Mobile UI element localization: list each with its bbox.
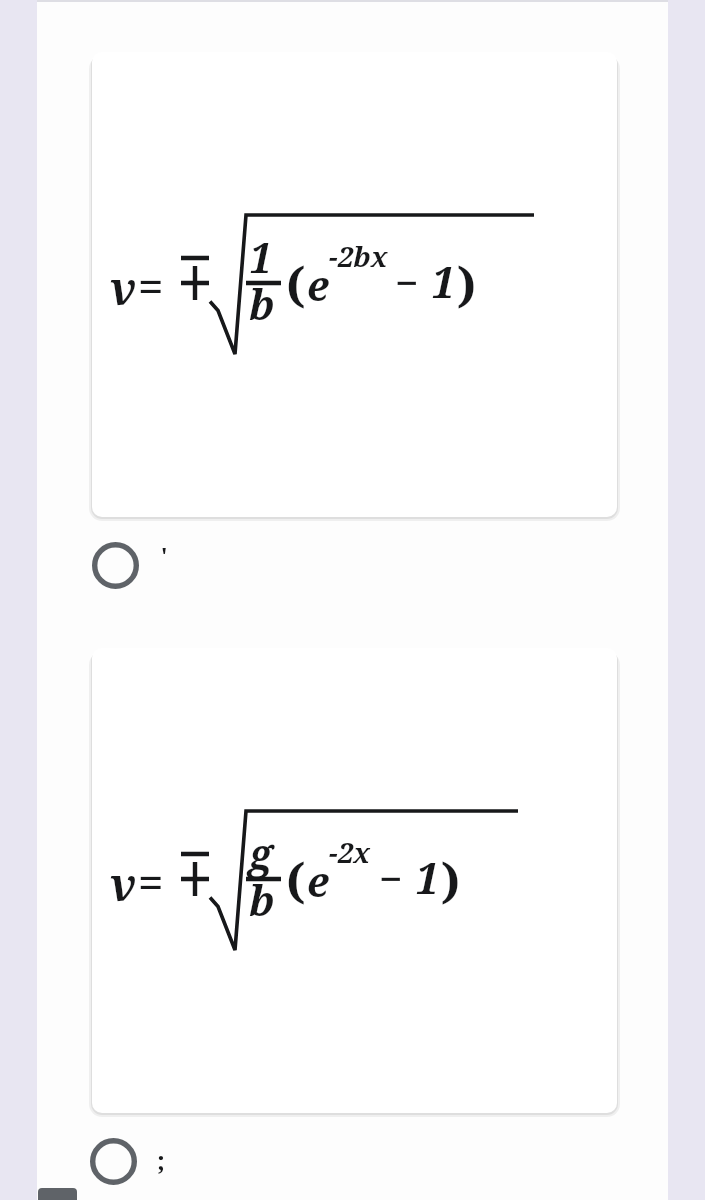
staticText: v	[110, 257, 137, 318]
staticText: g	[249, 825, 273, 881]
staticText: (	[286, 251, 306, 316]
staticText: −2bx	[329, 237, 388, 275]
staticText: b	[249, 872, 275, 928]
button[interactable]: Select option 2	[90, 1138, 137, 1185]
staticText: =	[138, 851, 164, 912]
staticText: v	[110, 853, 137, 914]
staticText: e	[307, 853, 329, 909]
button[interactable]: v	[92, 52, 617, 517]
staticText: =	[138, 255, 164, 316]
staticText: −	[379, 850, 403, 906]
button[interactable]: v	[92, 648, 617, 1113]
staticText: −	[395, 254, 419, 310]
staticText: ;	[157, 1142, 165, 1177]
staticText: b	[249, 276, 275, 332]
staticText: (	[286, 847, 306, 912]
staticText: 1	[431, 252, 456, 311]
staticText: )	[441, 847, 461, 912]
staticText: )	[457, 251, 477, 316]
staticText: 1	[415, 848, 440, 907]
staticText: −2x	[329, 833, 371, 871]
button[interactable]: Select option 1	[92, 542, 139, 589]
staticText: e	[307, 257, 329, 313]
staticText: 1	[249, 229, 272, 285]
staticText: '	[161, 540, 168, 570]
